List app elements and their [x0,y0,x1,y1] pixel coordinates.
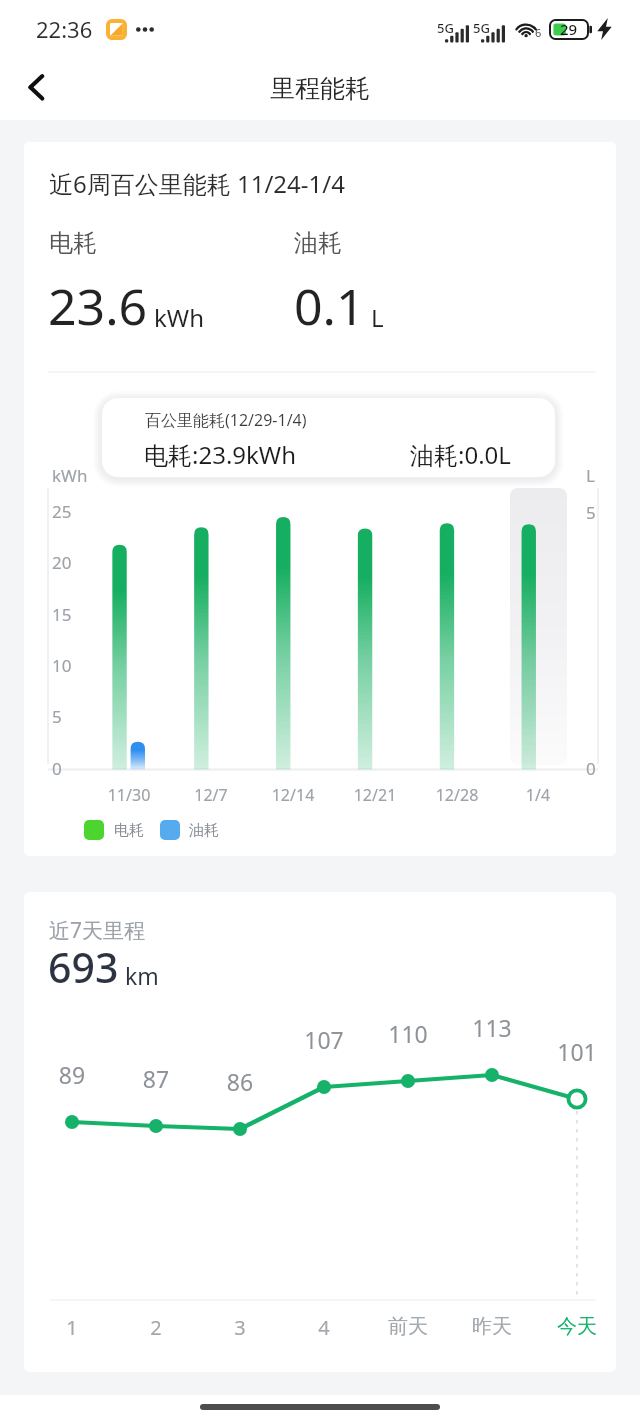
staticText: 2 [111,1314,201,1341]
staticText: kWh [52,464,88,487]
staticText: 20 [52,551,72,574]
staticText: L [371,301,384,334]
staticText: 29 [560,19,578,39]
button[interactable]: 近7天里程 [24,892,616,1372]
staticText: 10 [52,654,72,677]
button[interactable]: 电耗 [84,820,219,840]
staticText: 近6周百公里能耗 11/24-1/4 [49,167,345,200]
staticText: 113 [447,1012,537,1043]
staticText: 11/30 [84,784,174,806]
staticText: 12/7 [166,784,256,806]
staticText: 87 [111,1063,201,1094]
staticText: 里程能耗 [270,73,370,104]
staticText: 近7天里程 [49,916,146,945]
staticText: 3 [195,1314,285,1341]
staticText: 电耗:23.9kWh [144,438,297,471]
button[interactable]: 近6周百公里能耗 11/24-1/4 [24,142,616,856]
staticText: 23.6 [48,272,148,340]
staticText: 昨天 [447,1314,537,1339]
staticText: 0 [52,757,62,780]
staticText: 5 [586,501,596,524]
staticText: 油耗 [294,228,342,258]
staticText: 0 [586,757,596,780]
staticText: 22:36 [36,14,93,44]
staticText: 12/28 [412,784,502,806]
staticText: 今天 [532,1314,616,1339]
staticText: 百公里能耗(12/29-1/4) [145,409,307,431]
staticText: 15 [52,603,72,626]
staticText: 油耗:0.0L [410,438,511,471]
staticText: 油耗 [189,821,219,840]
staticText: 89 [27,1059,117,1090]
staticText: 12/14 [248,784,338,806]
staticText: L [586,464,595,487]
staticText: 6 [535,25,542,40]
staticText: 5G [473,19,490,37]
staticText: 5G [437,19,454,37]
staticText: 电耗 [49,228,97,258]
staticText: 1 [27,1314,117,1341]
staticText: 0.1 [294,272,365,340]
staticText: 86 [195,1066,285,1097]
staticText: 101 [532,1036,616,1067]
staticText: 693 [48,939,119,995]
staticText: 25 [52,500,72,523]
button[interactable]: Back [13,64,60,111]
staticText: 12/21 [330,784,420,806]
staticText: kWh [154,301,204,334]
staticText: 电耗 [114,821,144,840]
staticText: 110 [363,1018,453,1049]
staticText: 前天 [363,1314,453,1339]
staticText: km [125,960,159,991]
staticText: 5 [52,705,62,728]
staticText: 1/4 [493,784,583,806]
staticText: 107 [279,1024,369,1055]
staticText: 4 [279,1314,369,1341]
